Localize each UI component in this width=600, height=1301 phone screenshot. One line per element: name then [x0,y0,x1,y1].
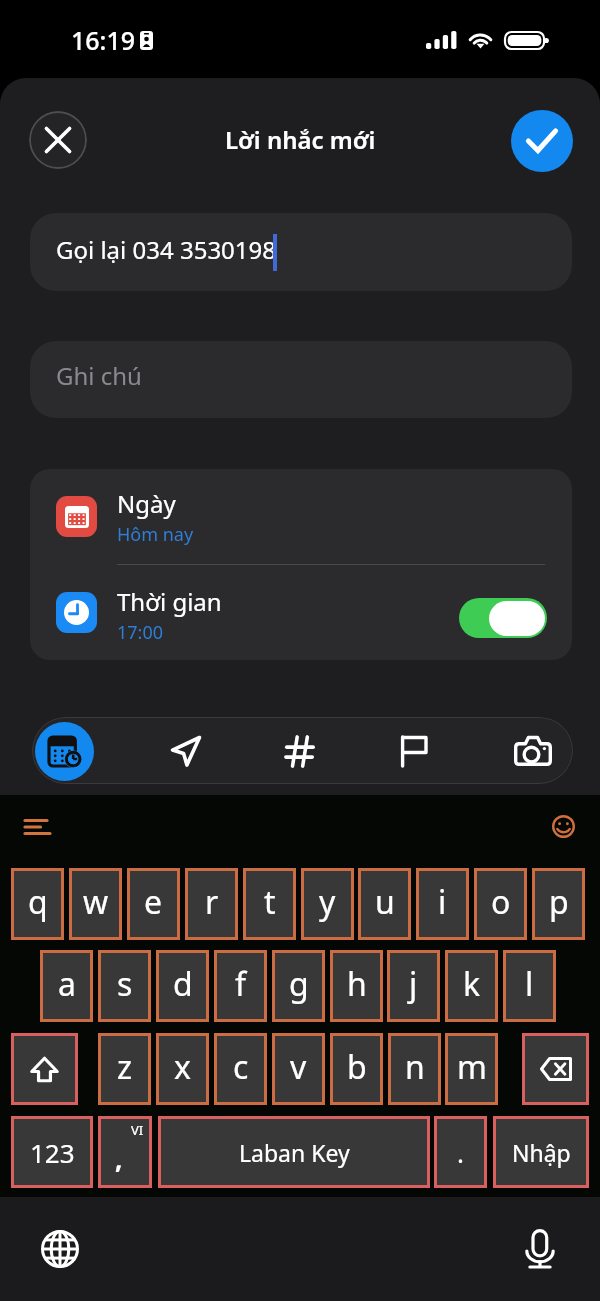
button[interactable]: Done [511,110,573,172]
button[interactable]: Nhập [496,1119,586,1185]
staticText: e [144,880,163,924]
button[interactable]: f [217,953,264,1019]
staticText: Ngày [117,487,176,520]
button[interactable]: Tag [273,725,325,777]
staticText: n [405,1045,425,1089]
button[interactable]: Shift [14,1036,75,1102]
button[interactable]: c [217,1036,264,1102]
staticText: d [173,962,193,1006]
staticText: b [347,1045,367,1089]
staticText: , [115,1141,123,1176]
button[interactable]: o [477,871,524,937]
button[interactable]: Close [29,111,87,169]
staticText: w [83,880,109,924]
button[interactable]: Laban Key [161,1119,427,1185]
button[interactable]: r [188,871,235,937]
button[interactable]: Date and time [35,722,94,781]
staticText: r [205,880,219,924]
staticText: q [28,880,48,924]
button[interactable]: Thời gian [30,565,572,660]
staticText: c [233,1045,249,1089]
staticText: g [289,962,309,1006]
button[interactable]: a [43,953,90,1019]
button[interactable]: b [333,1036,380,1102]
button[interactable]: Time toggle [459,598,547,638]
staticText: v [290,1045,307,1089]
button[interactable]: i [419,871,466,937]
button[interactable]: u [361,871,408,937]
button[interactable]: Ghi chú [30,341,572,418]
button[interactable]: Emoji [539,802,587,850]
staticText: . [457,1135,464,1170]
button[interactable]: l [506,953,553,1019]
staticText: j [409,962,418,1006]
staticText: t [264,880,276,924]
button[interactable]: y [304,871,351,937]
button[interactable]: Voice input [516,1225,564,1273]
button[interactable]: VI [101,1119,149,1185]
staticText: 123 [30,1135,75,1170]
staticText: i [438,880,447,924]
staticText: m [457,1045,487,1089]
staticText: z [117,1045,133,1089]
button[interactable]: Camera [507,725,559,777]
button[interactable]: . [437,1119,484,1185]
staticText: Gọi lại 034 3530198 [56,233,277,266]
staticText: y [319,880,336,924]
button[interactable]: Change language [36,1225,84,1273]
staticText: Hôm nay [117,522,194,547]
staticText: 16:19 [71,23,136,57]
button[interactable]: Backspace [525,1036,586,1102]
staticText: o [491,880,511,924]
button[interactable]: v [275,1036,322,1102]
button[interactable]: 123 [14,1119,90,1185]
button[interactable]: Location [160,725,212,777]
button[interactable]: Ngày [30,469,572,564]
staticText: p [549,880,569,924]
button[interactable]: w [72,871,119,937]
button[interactable]: p [535,871,582,937]
button[interactable]: k [448,953,495,1019]
staticText: 17:00 [117,620,164,645]
button[interactable]: q [14,871,61,937]
button[interactable]: d [159,953,206,1019]
staticText: Laban Key [239,1137,350,1168]
button[interactable]: h [333,953,380,1019]
staticText: x [174,1045,191,1089]
staticText: Nhập [512,1137,571,1168]
button[interactable]: g [275,953,322,1019]
button[interactable]: e [130,871,177,937]
button[interactable]: t [246,871,293,937]
staticText: a [58,962,76,1006]
button[interactable]: Flag [388,725,440,777]
button[interactable]: n [391,1036,438,1102]
button[interactable]: m [448,1036,495,1102]
staticText: Lời nhắc mới [225,123,376,156]
button[interactable]: z [101,1036,148,1102]
button[interactable]: j [390,953,437,1019]
staticText: k [463,962,481,1006]
staticText: f [235,962,247,1006]
button[interactable]: s [101,953,148,1019]
staticText: u [375,880,395,924]
staticText: Thời gian [117,585,222,618]
staticText: h [347,962,367,1006]
staticText: s [117,962,133,1006]
button[interactable]: Menu [12,803,62,851]
button[interactable]: Gọi lại 034 3530198 [30,213,572,291]
button[interactable]: x [159,1036,206,1102]
staticText: VI [131,1121,144,1139]
staticText: l [525,962,534,1006]
staticText: Ghi chú [56,359,142,392]
